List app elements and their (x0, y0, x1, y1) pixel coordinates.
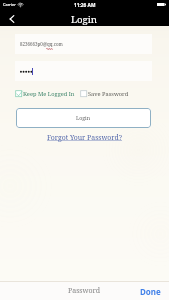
staticText: Login (71, 13, 97, 26)
button[interactable]: 8236663p0@qq.com (15, 34, 152, 54)
button[interactable]: Done (140, 286, 161, 297)
button[interactable]: Save Password (80, 90, 129, 98)
staticText: 8236663p0@qq.com (20, 41, 63, 47)
button[interactable]: Login (16, 108, 151, 128)
button[interactable]: Back (5, 12, 18, 25)
staticText: Password (68, 286, 101, 296)
button[interactable]: Keep Me Logged In (15, 90, 75, 98)
button[interactable]: Forgot Your Password? (47, 133, 123, 142)
staticText: 11:26 AM (74, 2, 96, 9)
button[interactable] (15, 61, 152, 81)
staticText: Login (76, 114, 91, 121)
staticText: Save Password (88, 90, 129, 98)
staticText: Done (140, 286, 161, 297)
staticText: Carrier (3, 2, 16, 7)
staticText: Keep Me Logged In (23, 90, 75, 98)
